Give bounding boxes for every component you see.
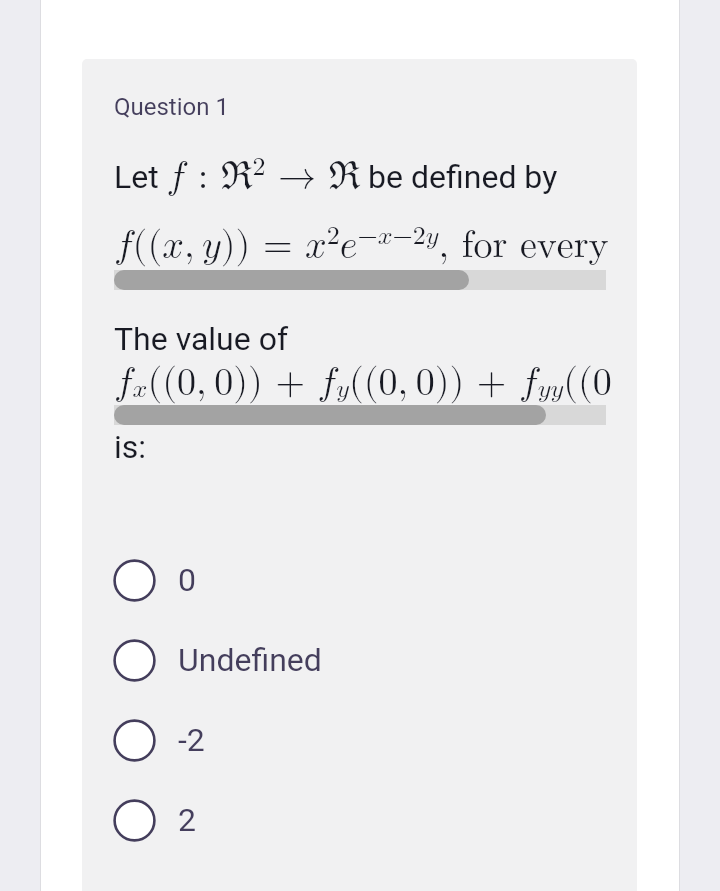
staticText: Let 𝑓 : ℜ2 → ℜ be defined by [114, 154, 558, 196]
staticText: is: [114, 428, 147, 466]
staticText: 2 [178, 801, 196, 839]
staticText: Question 1 [114, 93, 229, 121]
staticText: The value of [114, 320, 288, 358]
staticText: -2 [178, 721, 205, 759]
button[interactable]: -2 [82, 700, 637, 780]
staticText: Undefined [178, 641, 322, 679]
staticText: 𝑓𝑥((0, 0)) + 𝑓𝑦((0, 0)) + 𝑓𝑦𝑦((0 [114, 363, 612, 402]
button[interactable]: 0 [82, 540, 637, 620]
staticText: 𝑓((𝑥, 𝑦)) = 𝑥2𝑒−𝑥−2𝑦, for every [114, 223, 609, 264]
button[interactable]: Undefined [82, 620, 637, 700]
button[interactable]: 2 [82, 780, 637, 860]
staticText: 0 [178, 561, 196, 599]
